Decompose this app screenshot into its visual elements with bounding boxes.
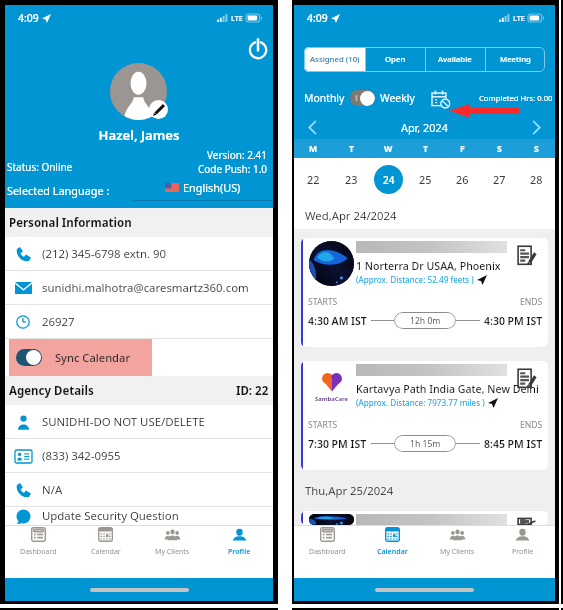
button[interactable]: Edit photo xyxy=(149,100,168,119)
staticText: F xyxy=(460,143,465,155)
staticText: M xyxy=(309,143,318,155)
button[interactable]: Dashboard xyxy=(5,526,72,578)
button[interactable]: Profile photo xyxy=(110,63,167,120)
button[interactable]: Dashboard xyxy=(294,526,360,578)
staticText: ENDS xyxy=(520,419,543,431)
staticText: (833) 342-0955 xyxy=(42,448,121,464)
staticText: Status: Online xyxy=(7,160,73,174)
button[interactable]: (212) 345-6798 extn. 90 xyxy=(5,237,273,270)
staticText: Weekly xyxy=(380,91,415,105)
staticText: Available xyxy=(438,54,472,65)
staticText: Dashboard xyxy=(309,546,346,556)
staticText: Profile xyxy=(228,546,251,556)
button[interactable]: Mall street..illi di a 1 xyxy=(301,511,548,525)
staticText: Thu,Apr 25/2024 xyxy=(305,483,394,498)
staticText: Kartavya Path India Gate, New Delhi xyxy=(356,382,539,396)
button[interactable]: 24 xyxy=(370,158,407,201)
button[interactable]: 1 Norterra Dr USAA, Phoenix xyxy=(301,238,548,347)
button[interactable]: Update Security Question xyxy=(5,507,273,525)
staticText: Calendar xyxy=(91,546,121,556)
staticText: 7:30 PM IST xyxy=(308,437,367,451)
staticText: N/A xyxy=(42,482,63,498)
button[interactable]: English(US) xyxy=(133,180,273,201)
staticText: S xyxy=(497,143,502,155)
staticText: 4:09 xyxy=(18,11,39,25)
staticText: Version: 2.41 xyxy=(207,148,268,162)
button[interactable] xyxy=(350,90,375,106)
button[interactable]: N/A xyxy=(5,473,273,506)
button[interactable]: Previous month xyxy=(304,118,323,137)
staticText: Apr, 2024 xyxy=(401,120,448,135)
staticText: Monthly xyxy=(304,91,345,105)
button[interactable]: SambaCare xyxy=(301,361,548,470)
staticText: 26 xyxy=(456,172,469,187)
button[interactable]: Meeting xyxy=(485,47,545,72)
button[interactable]: Sync Calendar xyxy=(9,339,152,376)
button[interactable]: sunidhi.malhotra@caresmartz360.com xyxy=(5,271,273,304)
staticText: My Clients xyxy=(440,546,475,556)
staticText: ID: 22 xyxy=(236,383,269,399)
button[interactable]: Notes xyxy=(516,245,537,266)
staticText: 1h 15m xyxy=(410,438,441,450)
staticText: Selected Language : xyxy=(7,183,110,198)
staticText: Open xyxy=(385,54,406,65)
staticText: Profile xyxy=(512,546,534,556)
staticText: Dashboard xyxy=(20,546,57,556)
staticText: ENDS xyxy=(520,296,543,308)
button[interactable]: 22 xyxy=(294,158,332,201)
staticText: 4:30 PM IST xyxy=(484,314,543,328)
button[interactable]: 26 xyxy=(444,158,481,201)
staticText: 1 Norterra Dr USAA, Phoenix xyxy=(356,259,501,273)
staticText: SambaCare xyxy=(315,395,349,403)
staticText: W xyxy=(384,143,393,155)
staticText: My Clients xyxy=(155,546,190,556)
button[interactable]: 28 xyxy=(518,158,555,201)
staticText: (Approx. Distance: 52.49 feets ) xyxy=(356,274,474,285)
staticText: sunidhi.malhotra@caresmartz360.com xyxy=(42,280,249,296)
button[interactable]: 23 xyxy=(332,158,370,201)
staticText: 4:09 xyxy=(307,11,328,25)
staticText: Sync Calendar xyxy=(55,350,131,365)
button[interactable]: My Clients xyxy=(425,526,490,578)
button[interactable]: 27 xyxy=(481,158,518,201)
button[interactable]: Calendar xyxy=(360,526,425,578)
button[interactable]: My Clients xyxy=(139,526,206,578)
staticText: 8:45 PM IST xyxy=(484,437,543,451)
staticText: 25 xyxy=(419,172,432,187)
button[interactable]: Open xyxy=(365,47,425,72)
staticText: 22 xyxy=(307,172,320,187)
staticText: STARTS xyxy=(308,296,338,308)
button[interactable]: Notes xyxy=(516,518,537,525)
button[interactable]: Calendar filter xyxy=(432,90,449,107)
staticText: STARTS xyxy=(308,419,338,431)
staticText: LTE xyxy=(231,13,243,23)
staticText: Assigned (10) xyxy=(310,54,360,65)
staticText: 24 xyxy=(383,173,395,187)
button[interactable]: Calendar xyxy=(72,526,139,578)
staticText: Code Push: 1.0 xyxy=(198,162,268,176)
button[interactable]: Assigned (10) xyxy=(304,47,365,72)
staticText: LTE xyxy=(513,13,525,23)
button[interactable]: Power / Logout xyxy=(247,38,269,60)
button[interactable]: (833) 342-0955 xyxy=(5,439,273,472)
button[interactable]: 26927 xyxy=(5,305,273,338)
button[interactable]: Profile xyxy=(206,526,273,578)
staticText: Wed,Apr 24/2024 xyxy=(305,208,397,223)
staticText: Meeting xyxy=(500,54,531,65)
staticText: 12h 0m xyxy=(410,315,441,327)
button[interactable]: SUNIDHI-DO NOT USE/DELETE xyxy=(5,405,273,438)
staticText: 27 xyxy=(493,172,506,187)
staticText: 4:30 AM IST xyxy=(308,314,367,328)
button[interactable]: Notes xyxy=(516,368,537,389)
staticText: (212) 345-6798 extn. 90 xyxy=(42,246,166,262)
button[interactable]: Available xyxy=(425,47,485,72)
staticText: 23 xyxy=(345,172,358,187)
button[interactable]: Profile xyxy=(490,526,555,578)
staticText: 28 xyxy=(530,172,543,187)
staticText: 26927 xyxy=(42,314,75,330)
staticText: S xyxy=(534,143,539,155)
button[interactable]: Next month xyxy=(526,118,545,137)
staticText: Update Security Question xyxy=(42,508,179,524)
staticText: Personal Information xyxy=(9,215,132,231)
button[interactable]: 25 xyxy=(407,158,444,201)
